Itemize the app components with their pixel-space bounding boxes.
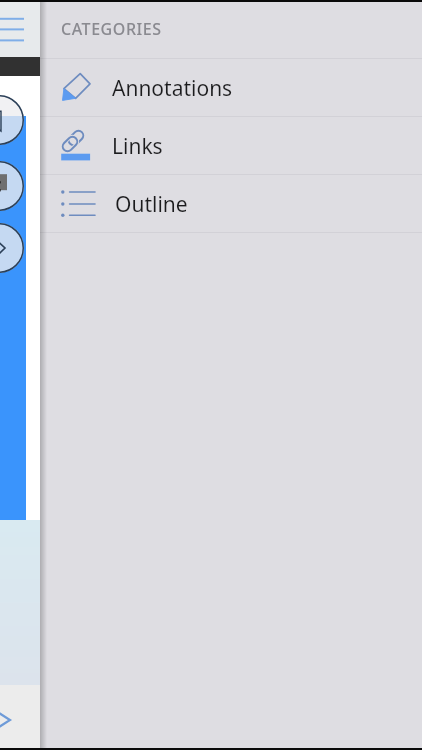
button[interactable]: Bookmark [0,95,24,145]
button[interactable]: Crop [0,161,24,211]
button[interactable]: Outline [40,175,422,232]
button[interactable]: Annotations [40,59,422,116]
staticText: Links [112,132,163,161]
staticText: Annotations [112,74,233,103]
staticText: CATEGORIES [61,18,162,40]
button[interactable]: Next page [0,223,24,273]
staticText: Outline [115,190,188,219]
button[interactable]: Open navigation menu [0,0,40,57]
button[interactable]: Links [40,117,422,174]
